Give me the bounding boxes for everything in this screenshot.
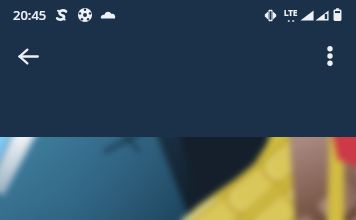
button[interactable]: Back — [9, 37, 47, 75]
button[interactable]: More options — [311, 37, 349, 75]
staticText: LTE — [284, 7, 298, 18]
staticText: 20:45 — [13, 6, 47, 24]
